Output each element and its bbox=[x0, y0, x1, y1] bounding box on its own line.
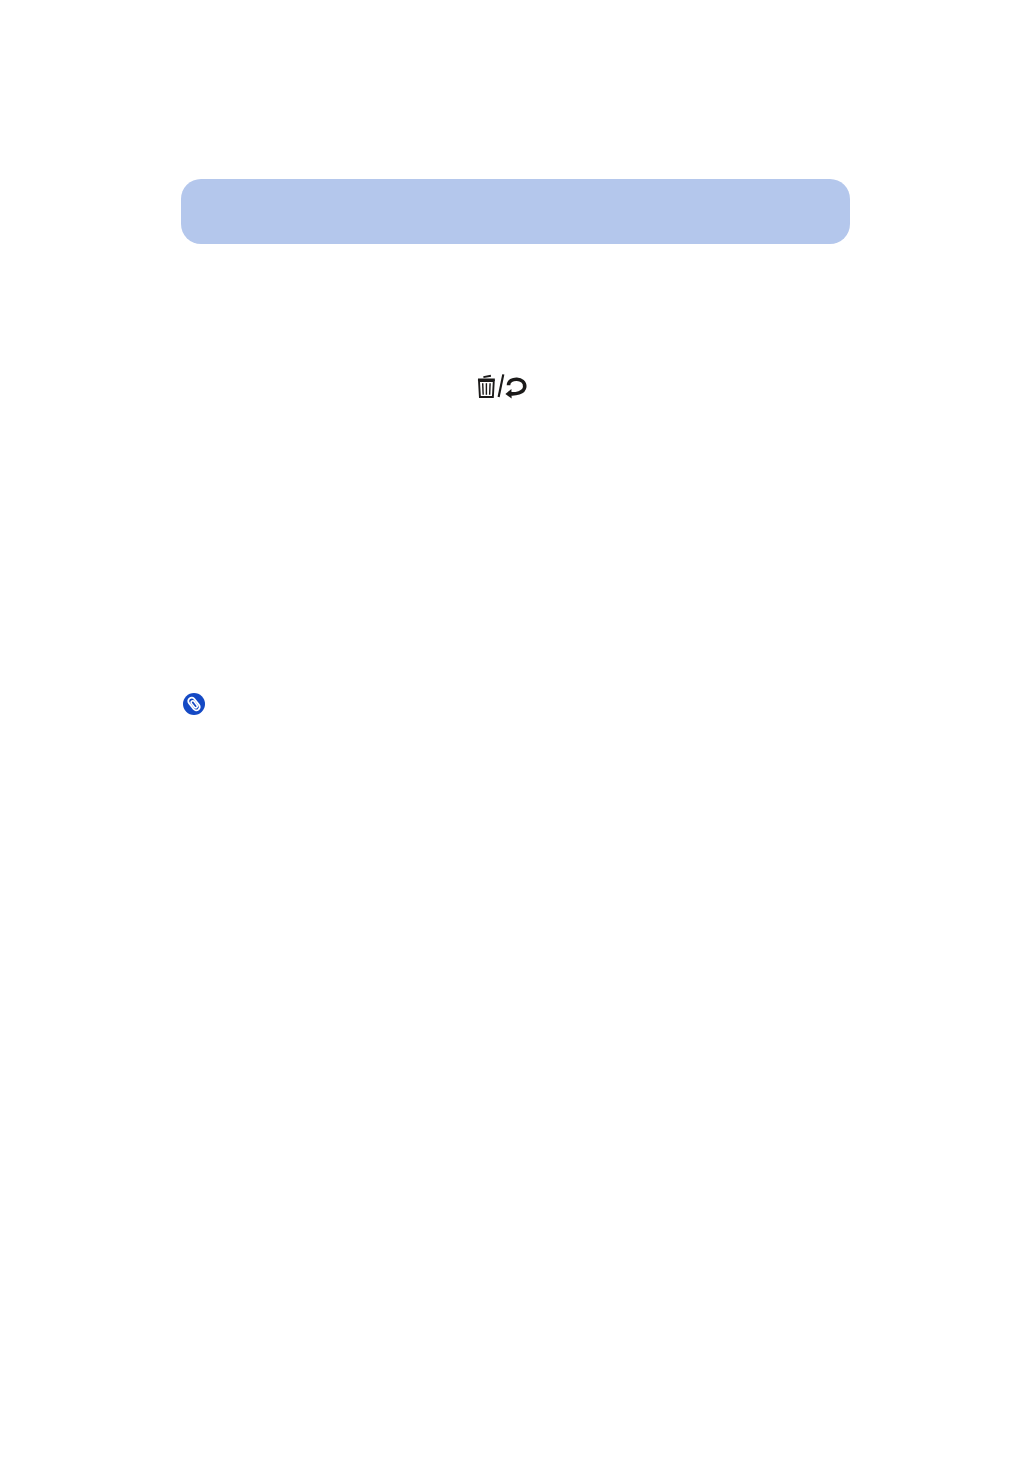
button[interactable] bbox=[181, 179, 850, 244]
button[interactable]: Attachment bbox=[183, 693, 205, 715]
button[interactable]: Delete or undo bbox=[476, 370, 528, 400]
